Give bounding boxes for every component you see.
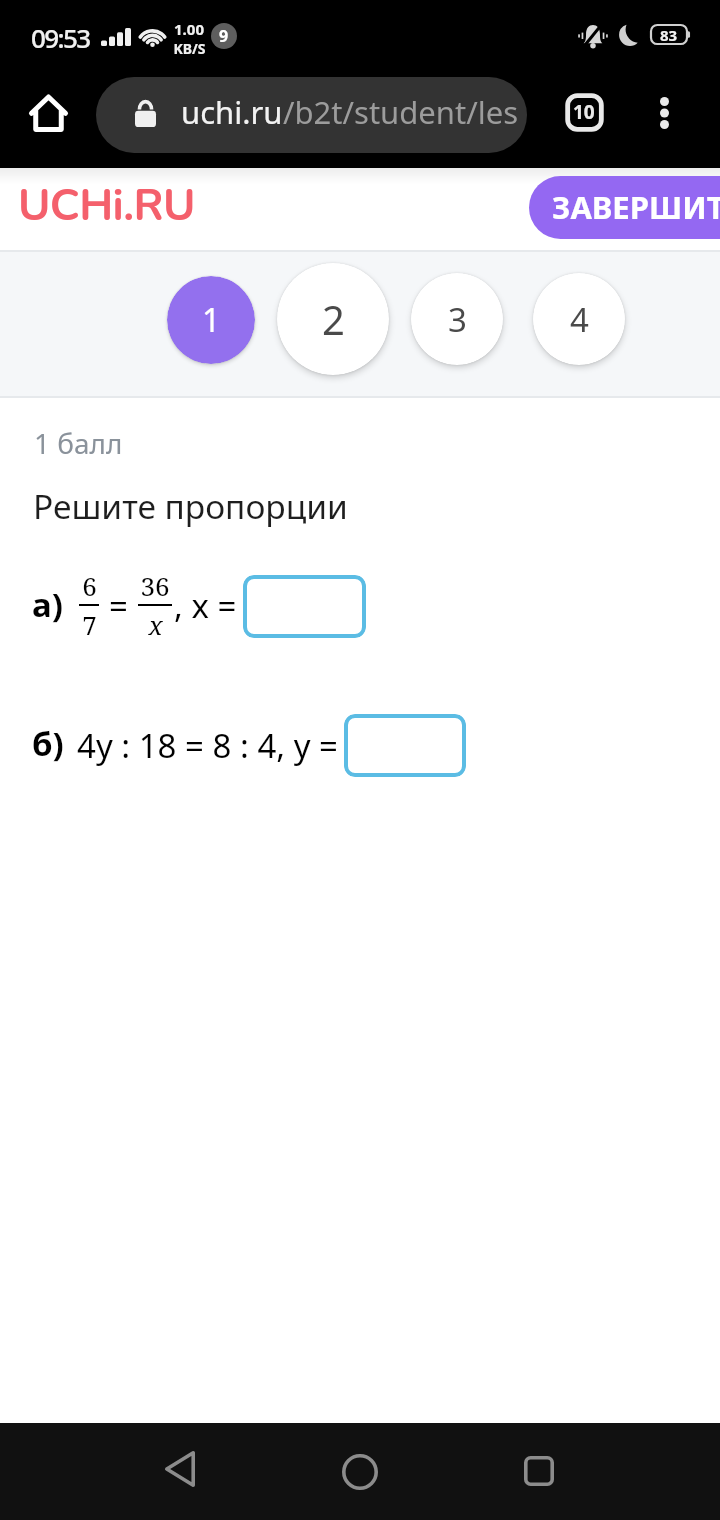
staticText: 10 xyxy=(573,99,595,125)
button[interactable] xyxy=(344,714,466,777)
staticText: 7 xyxy=(82,607,97,642)
button[interactable]: 4 xyxy=(533,273,625,365)
button[interactable] xyxy=(243,575,366,638)
staticText: Решите пропорции xyxy=(33,483,348,529)
other: Silent mode xyxy=(576,21,610,50)
button[interactable]: 2 xyxy=(277,263,389,375)
staticText: 4 xyxy=(570,297,589,342)
staticText: 2 xyxy=(322,292,345,346)
staticText: x xyxy=(148,607,163,642)
button[interactable]: uchi.ru xyxy=(96,77,527,153)
button[interactable]: Back xyxy=(149,1438,211,1500)
other: Do not disturb xyxy=(617,22,643,48)
staticText: KB/S xyxy=(173,39,206,58)
staticText: 1.00 xyxy=(174,19,204,39)
staticText: 36 xyxy=(140,568,170,603)
staticText: 1 балл xyxy=(34,424,123,462)
button[interactable]: More options xyxy=(638,87,690,139)
button[interactable]: Recent apps xyxy=(508,1440,570,1502)
button[interactable]: ЗАВЕРШИТЬ xyxy=(529,176,720,239)
button[interactable]: 1 xyxy=(167,276,255,364)
button[interactable]: 3 xyxy=(411,273,503,365)
staticText: = xyxy=(109,583,128,628)
staticText: 4y : 18 = 8 : 4, y = xyxy=(77,723,338,768)
staticText: 1 xyxy=(202,298,221,342)
staticText: а) xyxy=(32,582,63,627)
button[interactable]: Home xyxy=(329,1441,391,1503)
staticText: 3 xyxy=(448,297,467,342)
staticText: uchi.ru xyxy=(181,91,283,133)
staticText: UCHi.RU xyxy=(18,176,195,236)
button[interactable]: Tabs, 10 open xyxy=(556,84,612,140)
staticText: , x = xyxy=(174,583,237,628)
staticText: б) xyxy=(32,721,64,766)
staticText: 9 xyxy=(219,25,229,47)
staticText: ЗАВЕРШИТЬ xyxy=(552,186,720,228)
staticText: 6 xyxy=(82,568,97,603)
staticText: /b2t/student/les xyxy=(283,91,519,133)
staticText: 83 xyxy=(660,25,678,45)
button[interactable]: Home page xyxy=(22,86,74,138)
staticText: 09:53 xyxy=(31,20,90,55)
